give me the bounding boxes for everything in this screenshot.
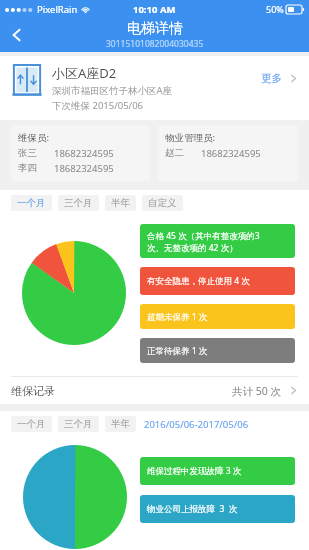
staticText: 一个月 [17,197,46,209]
staticText: 三个月 [64,197,93,209]
button[interactable]: 自定义 [142,195,183,211]
button[interactable]: 物业公司上报故障 3 次 [140,495,295,523]
button[interactable]: Elevator [0,56,309,120]
staticText: 电梯详情 [127,20,183,38]
staticText: PixelRain [37,3,78,16]
staticText: 有安全隐患，停止使用 4 次 [147,275,250,287]
button[interactable]: 半年 [105,416,136,432]
staticText: 物业管理员: [165,131,216,144]
staticText: 超期未保养 1 次 [147,311,208,323]
staticText: 10:10 AM [133,3,176,16]
staticText: 合格 45 次（其中有整改项的3 次、无整改项的 42 次） [147,230,260,253]
staticText: 三个月 [64,418,93,430]
button[interactable]: Back [0,18,34,52]
button[interactable]: 维保记录 [0,377,309,404]
button[interactable]: 三个月 [58,195,99,211]
staticText: 维保记录 [11,384,55,398]
staticText: 李四 [18,162,37,174]
staticText: 维保员: [18,131,50,144]
staticText: 维保过程中发现故障 3 次 [147,465,242,477]
staticText: 半年 [111,418,130,430]
staticText: 更多 [261,72,282,85]
staticText: 共计 50 次 [232,384,281,398]
staticText: 30115101082004030435 [106,38,204,50]
staticText: 2016/05/06-2017/05/06 [144,418,249,431]
staticText: 小区A座D2 [52,64,117,82]
staticText: 50% [266,3,284,15]
staticText: 18682324595 [54,147,114,160]
button[interactable]: 一个月 [11,195,52,211]
button[interactable]: 三个月 [58,416,99,432]
button[interactable]: 超期未保养 1 次 [140,304,295,329]
staticText: 半年 [111,197,130,209]
staticText: 深圳市福田区竹子林小区A座 [52,84,173,97]
button[interactable]: 半年 [105,195,136,211]
staticText: 自定义 [148,197,177,209]
staticText: 正常待保养 1 次 [147,345,208,357]
other: Elevator [11,64,43,98]
staticText: 下次维保 2015/05/06 [52,99,144,112]
button[interactable]: 合格 45 次（其中有整改项的3 次、无整改项的 42 次） [140,224,295,258]
button[interactable]: 2016/05/06-2017/05/06 [142,416,251,432]
staticText: 物业公司上报故障 3 次 [147,503,238,515]
staticText: 18682324595 [54,162,114,175]
staticText: 赵二 [165,147,184,159]
staticText: 张三 [18,147,37,159]
button[interactable]: 一个月 [11,416,52,432]
button[interactable]: 有安全隐患，停止使用 4 次 [140,267,295,295]
button[interactable]: 维保过程中发现故障 3 次 [140,457,295,485]
staticText: 一个月 [17,418,46,430]
button[interactable]: 物业管理员: [158,125,298,181]
button[interactable]: 维保员: [11,125,150,181]
staticText: 18682324595 [201,147,261,160]
button[interactable]: 正常待保养 1 次 [140,338,295,363]
